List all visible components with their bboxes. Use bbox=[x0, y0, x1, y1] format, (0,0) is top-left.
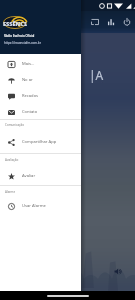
staticText: Compartilhar App bbox=[22, 139, 57, 145]
staticText: Usar Alarme bbox=[22, 203, 46, 209]
button[interactable]: Volume bbox=[114, 267, 124, 276]
staticText: Recados bbox=[22, 93, 39, 99]
staticText: Contato bbox=[22, 109, 38, 115]
button[interactable]: Mais... bbox=[0, 56, 81, 72]
button[interactable]: Usar Alarme bbox=[0, 198, 81, 214]
staticText: Comunicação bbox=[5, 123, 25, 127]
button[interactable]: Contato bbox=[0, 104, 81, 120]
staticText: https://essenciafm.com.br bbox=[4, 41, 41, 45]
button[interactable]: No ar bbox=[0, 72, 81, 88]
staticText: Ao Vivo bbox=[91, 79, 105, 84]
button[interactable]: Compartilhar App bbox=[0, 134, 81, 150]
staticText: Alarme bbox=[5, 190, 16, 194]
button[interactable]: Cast bbox=[87, 14, 103, 30]
staticText: |A bbox=[89, 67, 104, 83]
staticText: No ar bbox=[22, 77, 33, 83]
staticText: Rádio Essência Oficial bbox=[4, 34, 35, 38]
button[interactable]: Power off bbox=[119, 14, 135, 30]
staticText: Avaliar bbox=[22, 173, 36, 179]
button[interactable]: Equalizer bbox=[103, 14, 119, 30]
staticText: Avaliação bbox=[5, 158, 19, 162]
button[interactable]: Avaliar bbox=[0, 168, 81, 184]
staticText: Mais... bbox=[22, 61, 35, 67]
staticText: ESSÊNCIA bbox=[3, 20, 27, 28]
button[interactable]: Recados bbox=[0, 88, 81, 104]
